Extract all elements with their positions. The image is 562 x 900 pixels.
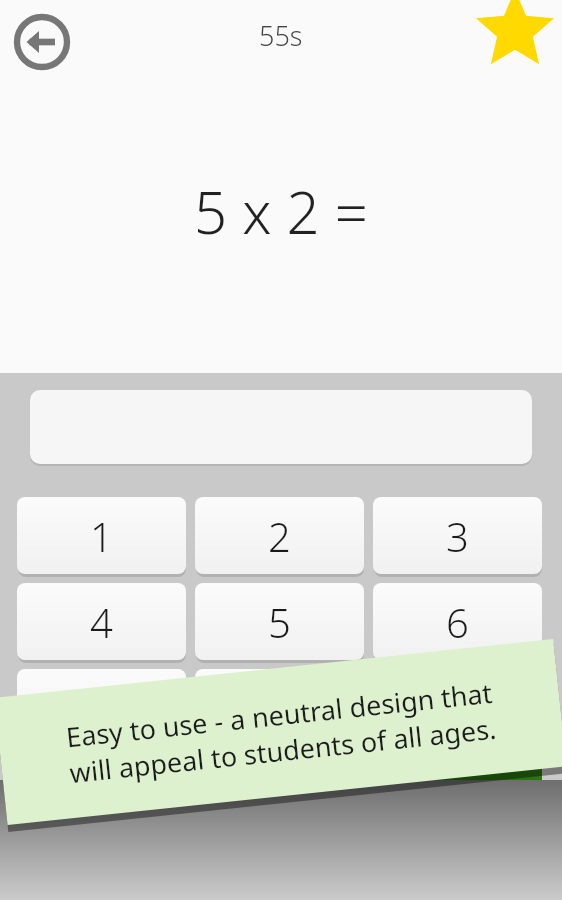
button[interactable]: 2 <box>195 497 364 577</box>
staticText: 55s <box>259 17 303 54</box>
button[interactable]: 8 <box>195 669 364 749</box>
staticText: 4 <box>90 595 113 649</box>
button[interactable]: 5 <box>195 583 364 663</box>
button[interactable]: Back <box>12 12 72 72</box>
button[interactable]: 0 <box>17 755 186 835</box>
button[interactable]: 6 <box>373 583 542 663</box>
button[interactable]: 9 <box>373 669 542 749</box>
button[interactable]: 3 <box>373 497 542 577</box>
button[interactable]: Submit <box>373 755 542 835</box>
staticText: Easy to use - a neutral design that will… <box>64 674 498 791</box>
staticText: 2 <box>268 509 291 563</box>
staticText: 5 <box>268 595 291 649</box>
staticText: 0 <box>90 767 113 821</box>
staticText: 3 <box>446 509 469 563</box>
staticText: 5 x 2 = <box>194 172 368 251</box>
button[interactable]: 1 <box>17 497 186 577</box>
button[interactable]: 4 <box>17 583 186 663</box>
staticText: 8 <box>268 681 291 735</box>
button[interactable] <box>195 755 364 835</box>
button[interactable]: Star <box>474 0 556 72</box>
staticText: 9 <box>446 681 469 735</box>
staticText: 1 <box>90 509 113 563</box>
button[interactable]: 7 <box>17 669 186 749</box>
staticText: 7 <box>90 681 113 735</box>
staticText: 6 <box>446 595 469 649</box>
button[interactable] <box>30 390 532 466</box>
